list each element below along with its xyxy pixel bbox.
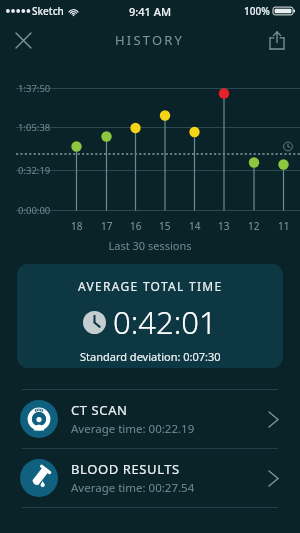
staticText: 0:00:00 xyxy=(18,204,51,217)
staticText: 0:32:19 xyxy=(18,164,51,177)
button[interactable]: Share xyxy=(260,23,294,57)
button[interactable]: AVERAGE TOTAL TIME xyxy=(17,264,283,368)
staticText: 12 xyxy=(248,219,260,233)
staticText: Standard deviation: 0:07:30 xyxy=(80,349,221,364)
staticText: 11 xyxy=(278,219,290,233)
button[interactable]: CT SCAN xyxy=(0,390,300,448)
staticText: Average time: 00:22.19 xyxy=(71,421,195,437)
staticText: 1:37:50 xyxy=(18,82,51,95)
button[interactable]: Close xyxy=(6,23,40,57)
staticText: 0:42:01 xyxy=(113,301,217,343)
button[interactable]: BLOOD RESULTS xyxy=(0,449,300,507)
staticText: 16 xyxy=(130,219,142,233)
staticText: AVERAGE TOTAL TIME xyxy=(78,278,223,294)
staticText: BLOOD RESULTS xyxy=(71,460,180,478)
staticText: 14 xyxy=(189,219,201,233)
staticText: 15 xyxy=(159,219,171,233)
staticText: Sketch xyxy=(32,4,64,18)
staticText: 18 xyxy=(71,219,83,233)
staticText: Last 30 sessions xyxy=(0,238,300,253)
staticText: CT SCAN xyxy=(71,401,128,419)
staticText: Average time: 00:27.54 xyxy=(71,480,195,496)
staticText: 100% xyxy=(244,4,270,18)
staticText: 13 xyxy=(218,219,230,233)
staticText: 17 xyxy=(101,219,113,233)
staticText: 9:41 AM xyxy=(129,4,172,19)
staticText: 1:05:38 xyxy=(18,121,51,134)
staticText: HISTORY xyxy=(115,31,185,49)
